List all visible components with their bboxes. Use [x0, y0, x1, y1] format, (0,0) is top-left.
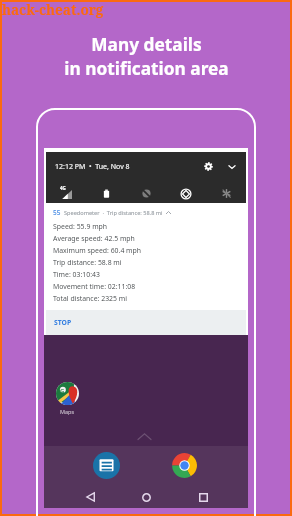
button[interactable]: Expand quick settings	[224, 159, 239, 174]
button[interactable]: STOP	[46, 310, 246, 335]
staticText: Trip distance: 58.8 mi	[53, 258, 122, 267]
button[interactable]: Recents	[186, 488, 220, 506]
button[interactable]: G	[50, 382, 84, 415]
staticText: 4G	[60, 185, 66, 191]
button[interactable]: Mobile data	[52, 181, 80, 206]
staticText: Speed: 55.9 mph	[53, 222, 108, 231]
staticText: G	[60, 387, 65, 395]
button[interactable]: Do not disturb	[132, 181, 160, 206]
button[interactable]: Chrome	[171, 452, 198, 479]
button[interactable]: Messages	[93, 452, 120, 479]
staticText: 55	[53, 208, 61, 217]
staticText: Speedometer · Trip distance: 58.8 mi	[64, 209, 163, 217]
staticText: 12:12 PM • Tue, Nov 8	[55, 162, 130, 172]
staticText: hack-cheat.org	[2, 1, 104, 19]
staticText: in notification area	[64, 57, 229, 81]
staticText: Maximum speed: 60.4 mph	[53, 246, 142, 255]
button[interactable]: Battery	[92, 181, 120, 206]
button[interactable]: Home	[129, 488, 163, 506]
button[interactable]: Back	[73, 488, 107, 506]
staticText: Time: 03:10:43	[53, 270, 100, 279]
button[interactable]: Auto rotate	[172, 181, 200, 206]
staticText: Movement time: 02:11:08	[53, 282, 136, 291]
button[interactable]: Flashlight	[212, 181, 240, 206]
staticText: STOP	[54, 318, 72, 327]
staticText: Average speed: 42.5 mph	[53, 234, 135, 243]
staticText: Total distance: 2325 mi	[53, 294, 127, 303]
button[interactable]: Settings	[201, 159, 216, 174]
staticText: Many details	[91, 33, 202, 57]
staticText: Maps	[60, 408, 75, 415]
